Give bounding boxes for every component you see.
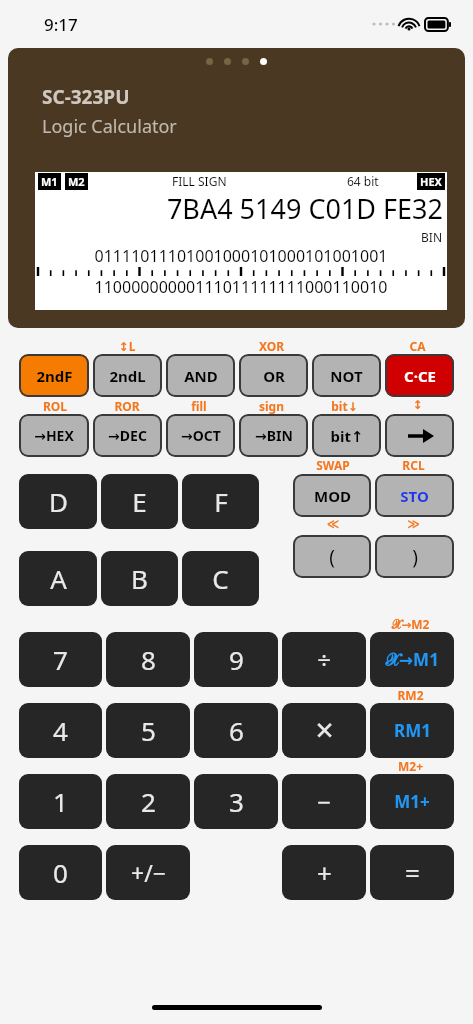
staticText: A	[50, 561, 67, 596]
button[interactable]: 0	[19, 845, 102, 900]
staticText: 𝓧→M1	[385, 648, 439, 671]
staticText: −	[317, 785, 331, 818]
staticText: 9:17	[44, 13, 78, 36]
button[interactable]: Right	[385, 414, 454, 457]
staticText: M2+	[367, 758, 454, 774]
button[interactable]: +	[282, 845, 366, 900]
button[interactable]: 1	[19, 774, 102, 829]
staticText: XOR	[235, 338, 308, 354]
button[interactable]: −	[282, 774, 366, 829]
button[interactable]: 2ndF	[19, 354, 89, 397]
button[interactable]: 𝓧→M1	[370, 632, 454, 687]
staticText: +	[317, 855, 332, 890]
staticText: HEX	[420, 174, 442, 189]
staticText: 𝓧→M2	[367, 616, 454, 632]
staticText: BIN	[35, 229, 442, 245]
button[interactable]: C·CE	[385, 354, 454, 397]
button[interactable]: C	[182, 551, 259, 606]
staticText: fill	[163, 398, 235, 414]
staticText: M2	[68, 174, 85, 189]
staticText: ROR	[91, 398, 163, 414]
staticText: D	[49, 484, 68, 519]
button[interactable]: NOT	[312, 354, 381, 397]
button[interactable]: AND	[166, 354, 235, 397]
staticText: ÷	[317, 643, 331, 676]
button[interactable]: OR	[239, 354, 308, 397]
button[interactable]: +/−	[106, 845, 190, 900]
staticText: MOD	[314, 486, 351, 506]
button[interactable]: 7	[19, 632, 102, 687]
staticText: )	[412, 544, 418, 570]
button[interactable]: →BIN	[239, 414, 308, 457]
staticText: 64 bit	[347, 173, 379, 189]
staticText: OR	[263, 366, 285, 386]
staticText: →DEC	[108, 426, 147, 445]
staticText: 6	[229, 713, 244, 748]
button[interactable]: =	[370, 845, 454, 900]
button[interactable]: STO	[375, 474, 454, 517]
staticText: +/−	[131, 857, 166, 888]
staticText: 2	[141, 784, 156, 819]
staticText: 2ndF	[36, 366, 73, 386]
button[interactable]: 3	[194, 774, 278, 829]
button[interactable]: F	[182, 474, 259, 529]
button[interactable]: 2	[106, 774, 190, 829]
staticText: ROL	[19, 398, 91, 414]
staticText: bit↑	[330, 426, 364, 446]
button[interactable]: (	[293, 535, 371, 578]
staticText: RCL	[373, 457, 454, 473]
button[interactable]: )	[375, 535, 454, 578]
staticText: →BIN	[255, 426, 293, 445]
staticText: ≪	[293, 517, 373, 531]
staticText: sign	[235, 398, 308, 414]
button[interactable]: →HEX	[19, 414, 89, 457]
staticText: 0	[53, 855, 68, 890]
staticText: E	[132, 484, 147, 519]
button[interactable]: →OCT	[166, 414, 235, 457]
staticText: (	[329, 544, 335, 570]
staticText: →HEX	[34, 426, 74, 445]
staticText: 3	[229, 784, 244, 819]
button[interactable]: A	[19, 551, 97, 606]
staticText: 8	[141, 642, 156, 677]
staticText: FILL SIGN	[172, 173, 227, 189]
staticText: 7	[53, 642, 68, 677]
button[interactable]: 2ndL	[93, 354, 162, 397]
button[interactable]: E	[101, 474, 178, 529]
button[interactable]: 5	[106, 703, 190, 758]
button[interactable]: 9	[194, 632, 278, 687]
staticText: Logic Calculator	[42, 114, 177, 139]
staticText: RM2	[367, 687, 454, 703]
button[interactable]: B	[101, 551, 178, 606]
button[interactable]: M1+	[370, 774, 454, 829]
button[interactable]: ÷	[282, 632, 366, 687]
button[interactable]: bit↑	[312, 414, 381, 457]
button[interactable]: 6	[194, 703, 278, 758]
button[interactable]: 8	[106, 632, 190, 687]
staticText: 11000000000111011111111000110010	[37, 276, 445, 298]
staticText: C·CE	[404, 366, 436, 386]
staticText: 1	[53, 784, 68, 819]
staticText: ≫	[373, 517, 454, 531]
staticText: 9	[229, 642, 244, 677]
button[interactable]: →DEC	[93, 414, 162, 457]
staticText: ✕	[314, 717, 335, 745]
staticText: ↕L	[91, 338, 163, 354]
staticText: →OCT	[181, 426, 221, 445]
staticText: NOT	[330, 366, 363, 386]
staticText: C	[212, 561, 229, 596]
button[interactable]: RM1	[370, 703, 454, 758]
staticText: 5	[141, 713, 156, 748]
staticText: 4	[53, 713, 68, 748]
button[interactable]: 4	[19, 703, 102, 758]
staticText: SC-323PU	[42, 84, 130, 110]
staticText: STO	[400, 486, 429, 506]
staticText: 01111011101001000101000101001001	[37, 245, 445, 267]
staticText: M1	[41, 174, 58, 189]
button[interactable]: D	[19, 474, 97, 529]
button[interactable]: MOD	[293, 474, 371, 517]
staticText: F	[214, 484, 228, 519]
staticText: B	[131, 561, 148, 596]
button[interactable]: ✕	[282, 703, 366, 758]
staticText: SWAP	[293, 457, 373, 473]
